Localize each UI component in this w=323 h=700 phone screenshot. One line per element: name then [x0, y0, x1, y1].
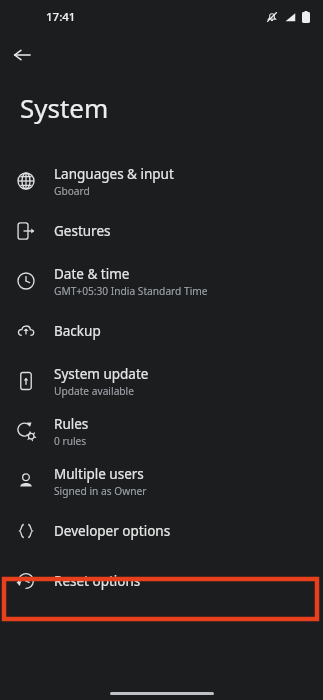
other: update [14, 369, 38, 393]
other: globe [14, 169, 38, 193]
staticText: Signed in as Owner [54, 484, 147, 498]
staticText: Date & time [54, 265, 130, 283]
button[interactable]: reset [0, 556, 323, 606]
staticText: Reset options [54, 572, 141, 590]
staticText: System [20, 90, 109, 125]
staticText: Multiple users [54, 465, 144, 483]
other: rules [14, 419, 38, 443]
button[interactable]: cloud [0, 306, 323, 356]
button[interactable]: globe [0, 156, 323, 206]
button[interactable]: Back [9, 42, 35, 68]
button[interactable]: clock [0, 256, 323, 306]
button[interactable]: update [0, 356, 323, 406]
button[interactable]: rules [0, 406, 323, 456]
button[interactable]: braces [0, 506, 323, 556]
button[interactable]: gesture [0, 206, 323, 256]
staticText: Developer options [54, 522, 171, 540]
other: clock [14, 269, 38, 293]
staticText: Gboard [54, 184, 90, 198]
staticText: Gestures [54, 222, 111, 240]
staticText: GMT+05:30 India Standard Time [54, 284, 208, 298]
staticText: Rules [54, 415, 89, 433]
other: reset [14, 569, 38, 593]
other: cloud [14, 319, 38, 343]
staticText: 17:41 [46, 9, 76, 25]
other: braces [14, 519, 38, 543]
staticText: System update [54, 365, 149, 383]
other: gesture [14, 219, 38, 243]
staticText: Backup [54, 322, 101, 340]
staticText: Update available [54, 384, 134, 398]
staticText: 0 rules [54, 434, 87, 448]
staticText: Languages & input [54, 165, 174, 183]
button[interactable]: person [0, 456, 323, 506]
other: person [14, 469, 38, 493]
